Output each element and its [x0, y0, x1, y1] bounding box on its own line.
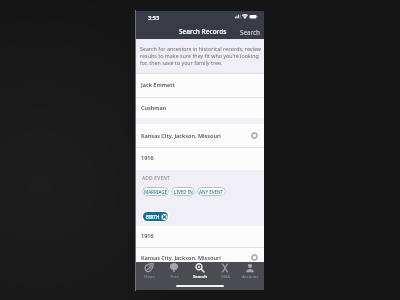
button[interactable]: Kansas City, Jackson, Missouri: [136, 124, 264, 147]
staticText: DNA: [221, 274, 230, 280]
staticText: Search for ancestors in historical recor…: [140, 45, 262, 52]
staticText: for, then save to your family tree.: [140, 59, 223, 66]
button[interactable]: Jack Emmett: [136, 74, 264, 97]
staticText: Account: [242, 274, 258, 280]
staticText: 1916: [141, 154, 154, 161]
staticText: MARRIAGE: [144, 189, 167, 195]
staticText: Kansas City, Jackson, Missouri: [141, 132, 221, 139]
staticText: 3:53: [148, 14, 160, 22]
button[interactable]: Clear: [251, 132, 258, 139]
staticText: Tree: [170, 274, 179, 280]
button[interactable]: ANY EVENT: [197, 187, 226, 196]
button[interactable]: Account: [238, 263, 262, 281]
button[interactable]: DNA: [213, 263, 237, 281]
staticText: BIRTH: [146, 214, 160, 220]
staticText: Search: [193, 274, 207, 280]
staticText: results to make sure they fit who you're…: [140, 52, 259, 59]
button[interactable]: 1916: [136, 226, 264, 247]
staticText: Search: [240, 28, 260, 37]
staticText: Search Records: [179, 27, 227, 36]
staticText: LIVED IN: [174, 189, 193, 195]
button[interactable]: Hints: [137, 263, 161, 281]
staticText: 1916: [141, 232, 154, 239]
staticText: Hints: [144, 274, 155, 280]
button[interactable]: Tree: [162, 263, 186, 281]
button[interactable]: Kansas City, Jackson, Missouri: [136, 248, 264, 264]
button[interactable]: Search: [188, 263, 212, 281]
button[interactable]: Cushman: [136, 98, 264, 118]
button[interactable]: Clear: [251, 254, 258, 261]
button[interactable]: MARRIAGE: [142, 187, 169, 196]
button[interactable]: BIRTH: [142, 211, 169, 222]
staticText: Kansas City, Jackson, Missouri: [141, 254, 221, 261]
button[interactable]: 1916: [136, 148, 264, 170]
staticText: Jack Emmett: [141, 81, 175, 88]
staticText: ADD EVENT: [142, 175, 171, 182]
staticText: ANY EVENT: [199, 189, 224, 195]
staticText: Cushman: [141, 104, 167, 111]
button[interactable]: Search: [240, 26, 264, 37]
button[interactable]: LIVED IN: [171, 187, 195, 196]
